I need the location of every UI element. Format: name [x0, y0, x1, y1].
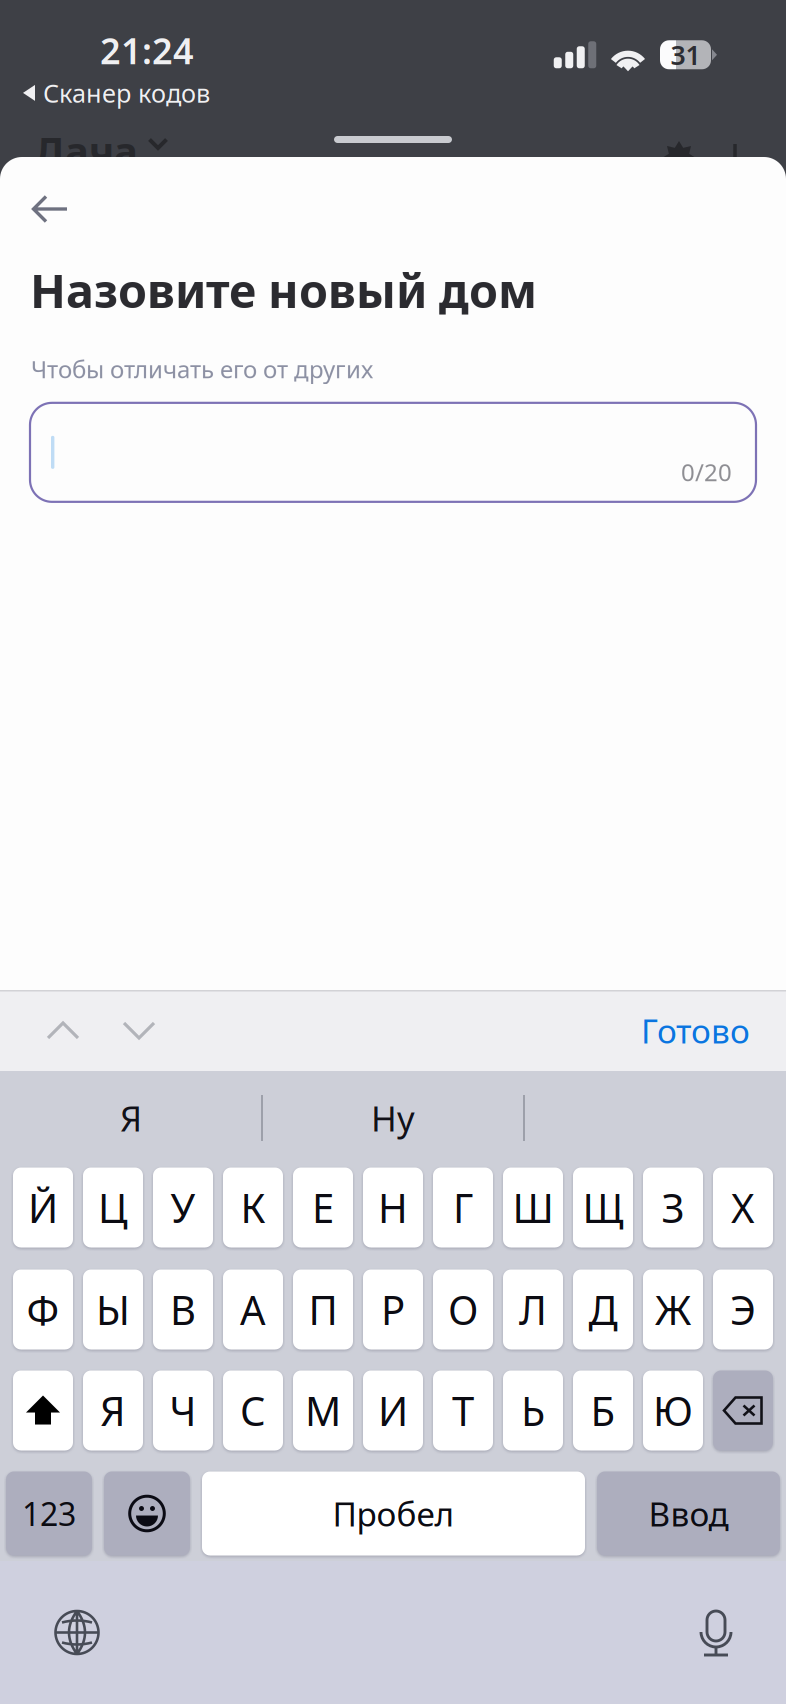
button[interactable]: Я — [83, 1370, 143, 1450]
staticText: Л — [519, 1283, 547, 1336]
button[interactable]: П — [293, 1269, 353, 1349]
staticText: Г — [453, 1181, 473, 1234]
staticText: Д — [588, 1283, 617, 1336]
staticText: 0/20 — [681, 456, 732, 488]
staticText: Ь — [521, 1384, 545, 1437]
staticText: Р — [381, 1283, 405, 1336]
button[interactable]: Й — [13, 1167, 73, 1247]
staticText: Х — [731, 1181, 755, 1234]
button[interactable]: Готово — [623, 990, 768, 1071]
staticText: Я — [120, 1095, 142, 1141]
button[interactable]: Л — [503, 1269, 563, 1349]
staticText: К — [240, 1181, 265, 1234]
button[interactable]: Ц — [83, 1167, 143, 1247]
button[interactable]: З — [643, 1167, 703, 1247]
staticText: У — [170, 1181, 195, 1234]
button[interactable]: Е — [293, 1167, 353, 1247]
staticText: 123 — [22, 1492, 76, 1535]
staticText: Сканер кодов — [43, 76, 210, 110]
button[interactable]: Э — [713, 1269, 773, 1349]
button[interactable]: Ввод — [597, 1471, 780, 1555]
button[interactable]: Х — [713, 1167, 773, 1247]
button[interactable]: К — [223, 1167, 283, 1247]
staticText: Пробел — [332, 1491, 454, 1536]
staticText: Ц — [98, 1181, 128, 1234]
button[interactable]: Ж — [643, 1269, 703, 1349]
staticText: Т — [452, 1384, 474, 1437]
button[interactable]: Н — [363, 1167, 423, 1247]
button[interactable]: Щ — [573, 1167, 633, 1247]
button[interactable]: Г — [433, 1167, 493, 1247]
staticText: Ш — [512, 1181, 553, 1234]
button[interactable]: Dictate — [673, 1588, 786, 1677]
button[interactable]: Пробел — [202, 1471, 585, 1555]
button[interactable]: Next field — [101, 990, 177, 1071]
button[interactable]: В — [153, 1269, 213, 1349]
staticText: Ф — [26, 1283, 59, 1336]
staticText: М — [305, 1384, 341, 1437]
staticText: В — [170, 1283, 196, 1336]
staticText: Н — [378, 1181, 408, 1234]
staticText: Назовите новый дом — [30, 259, 537, 321]
button[interactable]: А — [223, 1269, 283, 1349]
button[interactable]: Emoji — [104, 1471, 190, 1555]
staticText: Ю — [653, 1384, 693, 1437]
staticText: Ж — [655, 1283, 691, 1336]
button[interactable]: Shift — [13, 1370, 73, 1450]
staticText: 21:24 — [100, 26, 194, 74]
button[interactable]: Б — [573, 1370, 633, 1450]
staticText: И — [378, 1384, 408, 1437]
button[interactable]: 123 — [6, 1471, 92, 1555]
staticText: А — [240, 1283, 266, 1336]
button[interactable]: С — [223, 1370, 283, 1450]
staticText: Ы — [96, 1283, 130, 1336]
staticText: Ч — [169, 1384, 196, 1437]
button[interactable]: Ч — [153, 1370, 213, 1450]
button[interactable]: О — [433, 1269, 493, 1349]
button[interactable]: М — [293, 1370, 353, 1450]
button[interactable]: Ь — [503, 1370, 563, 1450]
staticText: Щ — [582, 1181, 623, 1234]
button[interactable]: Д — [573, 1269, 633, 1349]
staticText: Е — [312, 1181, 334, 1234]
staticText: Дача — [34, 124, 138, 177]
staticText: З — [661, 1181, 684, 1234]
staticText: С — [240, 1384, 266, 1437]
staticText: Чтобы отличать его от других — [31, 353, 373, 385]
button[interactable]: Ю — [643, 1370, 703, 1450]
staticText: Й — [28, 1181, 58, 1234]
button[interactable]: У — [153, 1167, 213, 1247]
staticText: Ну — [371, 1095, 415, 1141]
button[interactable]: Change keyboard — [0, 1587, 124, 1677]
staticText: Я — [100, 1384, 126, 1437]
button[interactable]: Р — [363, 1269, 423, 1349]
button[interactable]: Ы — [83, 1269, 143, 1349]
button[interactable]: Ш — [503, 1167, 563, 1247]
staticText: Б — [590, 1384, 615, 1437]
button[interactable]: Ну — [262, 1071, 524, 1165]
staticText: Э — [730, 1283, 756, 1336]
button[interactable]: Back — [0, 157, 93, 235]
button[interactable]: Previous field — [0, 990, 101, 1071]
button[interactable]: Я — [0, 1071, 262, 1165]
staticText: Готово — [641, 1008, 750, 1053]
staticText: О — [448, 1283, 478, 1336]
button[interactable]: Ф — [13, 1269, 73, 1349]
button[interactable]: Т — [433, 1370, 493, 1450]
staticText: П — [308, 1283, 337, 1336]
staticText: 31 — [670, 37, 700, 72]
button[interactable]: И — [363, 1370, 423, 1450]
staticText: Ввод — [648, 1491, 728, 1536]
button[interactable]: Delete — [713, 1370, 773, 1450]
